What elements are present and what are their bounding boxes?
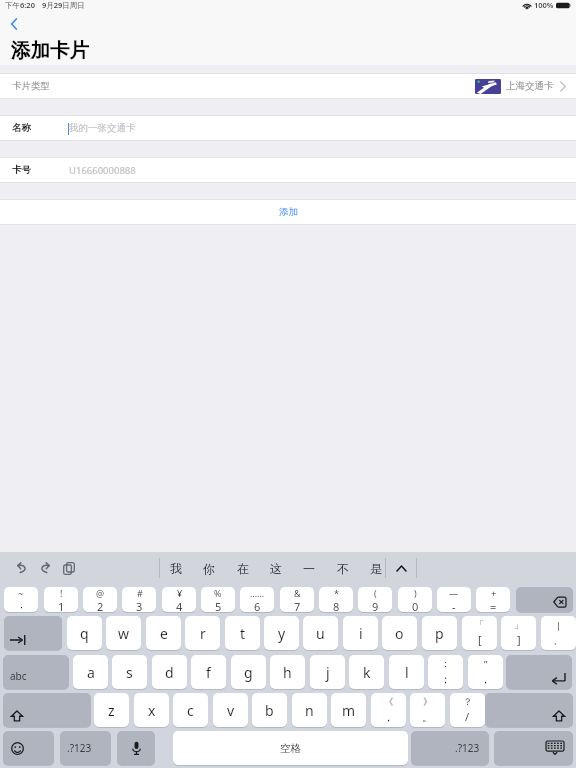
button[interactable]: r <box>185 616 220 650</box>
button[interactable]: 《 <box>371 693 406 727</box>
staticText: 空格 <box>280 742 301 755</box>
staticText: 下午6:20 <box>5 0 35 10</box>
button[interactable]: Redo <box>34 557 56 579</box>
button[interactable]: m <box>331 693 366 727</box>
button[interactable]: t <box>225 616 260 650</box>
button[interactable]: x <box>134 693 169 727</box>
button[interactable]: e <box>146 616 181 650</box>
staticText: f <box>206 663 211 682</box>
button[interactable]: i <box>343 616 378 650</box>
button[interactable]: h <box>270 655 305 689</box>
button[interactable]: More suggestions <box>391 552 411 584</box>
button[interactable]: k <box>349 655 384 689</box>
button[interactable]: Paste <box>58 557 80 579</box>
button[interactable]: l <box>389 655 424 689</box>
button[interactable]: * <box>319 587 353 612</box>
button[interactable]: Return <box>506 655 572 689</box>
button[interactable]: 这 <box>261 552 290 584</box>
button[interactable]: & <box>280 587 314 612</box>
staticText: n <box>305 701 314 720</box>
button[interactable]: 」 <box>501 616 536 650</box>
button[interactable]: g <box>231 655 266 689</box>
button[interactable]: Undo <box>10 557 32 579</box>
staticText: …… <box>250 587 265 599</box>
button[interactable]: Tab <box>4 616 62 650</box>
staticText: - <box>452 599 456 612</box>
staticText: g <box>244 663 253 682</box>
button[interactable]: Hide keyboard <box>494 731 573 765</box>
button[interactable]: ？ <box>450 693 485 727</box>
button[interactable]: 卡号 <box>0 158 576 182</box>
button[interactable]: Shift <box>3 693 91 727</box>
button[interactable]: .?123 <box>60 731 111 765</box>
button[interactable]: ¥ <box>162 587 196 612</box>
button[interactable]: Backspace <box>516 587 573 612</box>
staticText: 这 <box>270 561 282 576</box>
button[interactable]: @ <box>83 587 117 612</box>
button[interactable]: j <box>310 655 345 689</box>
staticText: — <box>449 587 459 599</box>
button[interactable]: 「 <box>462 616 497 650</box>
button[interactable]: ~ <box>4 587 38 612</box>
button[interactable]: 是 <box>361 552 390 584</box>
staticText: 添加卡片 <box>11 38 89 63</box>
staticText: U16660000888 <box>69 164 136 177</box>
button[interactable]: ( <box>358 587 392 612</box>
button[interactable]: 不 <box>328 552 357 584</box>
staticText: 4 <box>176 599 183 612</box>
button[interactable]: p <box>422 616 457 650</box>
button[interactable]: — <box>437 587 471 612</box>
button[interactable]: + <box>476 587 510 612</box>
staticText: abc <box>10 669 27 683</box>
staticText: 你 <box>203 561 215 576</box>
button[interactable]: ! <box>44 587 78 612</box>
button[interactable]: Shift <box>485 693 573 727</box>
button[interactable]: | <box>541 616 576 650</box>
button[interactable]: ” <box>468 655 503 689</box>
button[interactable]: …… <box>240 587 274 612</box>
button[interactable]: 名称 <box>0 116 576 140</box>
button[interactable]: s <box>112 655 147 689</box>
staticText: ! <box>60 587 63 599</box>
button[interactable]: 空格 <box>173 731 408 765</box>
staticText: ] <box>517 632 521 647</box>
button[interactable]: 在 <box>228 552 257 584</box>
staticText: 添加 <box>279 206 298 218</box>
button[interactable]: c <box>173 693 208 727</box>
button[interactable]: Emoji <box>3 731 54 765</box>
button[interactable]: y <box>264 616 299 650</box>
button[interactable]: d <box>152 655 187 689</box>
button[interactable]: % <box>201 587 235 612</box>
button[interactable]: u <box>303 616 338 650</box>
button[interactable]: z <box>94 693 129 727</box>
button[interactable]: 卡片类型 <box>0 74 576 98</box>
staticText: a <box>87 663 95 682</box>
button[interactable]: n <box>292 693 327 727</box>
button[interactable]: .?123 <box>411 731 489 765</box>
button[interactable]: abc <box>3 655 69 689</box>
button[interactable]: 你 <box>194 552 223 584</box>
button[interactable]: Dictate <box>117 731 155 765</box>
button[interactable]: 一 <box>294 552 323 584</box>
button[interactable]: # <box>122 587 156 612</box>
button[interactable]: Back <box>3 13 25 35</box>
staticText: r <box>200 624 206 643</box>
staticText: 0 <box>412 599 419 612</box>
button[interactable]: o <box>382 616 417 650</box>
button[interactable]: 添加 <box>0 200 576 224</box>
staticText: 3 <box>136 599 143 612</box>
button[interactable]: f <box>191 655 226 689</box>
button[interactable]: q <box>67 616 102 650</box>
button[interactable]: b <box>252 693 287 727</box>
button[interactable]: ) <box>398 587 432 612</box>
staticText: 我 <box>170 561 182 576</box>
button[interactable]: v <box>213 693 248 727</box>
staticText: ， <box>383 710 394 724</box>
button[interactable]: a <box>73 655 108 689</box>
staticText: * <box>334 587 339 599</box>
staticText: b <box>265 701 274 720</box>
button[interactable]: 》 <box>410 693 445 727</box>
button[interactable]: 我 <box>161 552 190 584</box>
button[interactable]: ： <box>428 655 463 689</box>
button[interactable]: w <box>106 616 141 650</box>
